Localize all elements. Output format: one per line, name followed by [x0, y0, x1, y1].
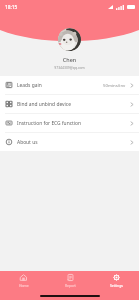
button[interactable]: Home: [0, 271, 47, 293]
button[interactable]: Bind and unbind device: [0, 95, 139, 113]
staticText: 18:15: [5, 4, 18, 11]
button[interactable]: Report: [47, 271, 93, 293]
staticText: Leads gain: [17, 82, 42, 89]
staticText: About us: [17, 139, 38, 146]
staticText: Settings: [110, 283, 123, 288]
staticText: Instruction for ECG function: [17, 120, 82, 127]
button[interactable]: Leads gain: [0, 76, 139, 94]
staticText: Report: [65, 283, 76, 288]
staticText: Home: [19, 283, 29, 288]
button[interactable]: Settings: [93, 271, 139, 293]
staticText: Chen: [0, 56, 139, 63]
staticText: Bind and unbind device: [17, 101, 71, 108]
button[interactable]: Instruction for ECG function: [0, 114, 139, 132]
staticText: 50mins/inv: [103, 82, 126, 88]
button[interactable]: About us: [0, 133, 139, 151]
staticText: 97344309@qq.com: [0, 65, 139, 70]
button[interactable]: Profile photo: [58, 28, 81, 51]
